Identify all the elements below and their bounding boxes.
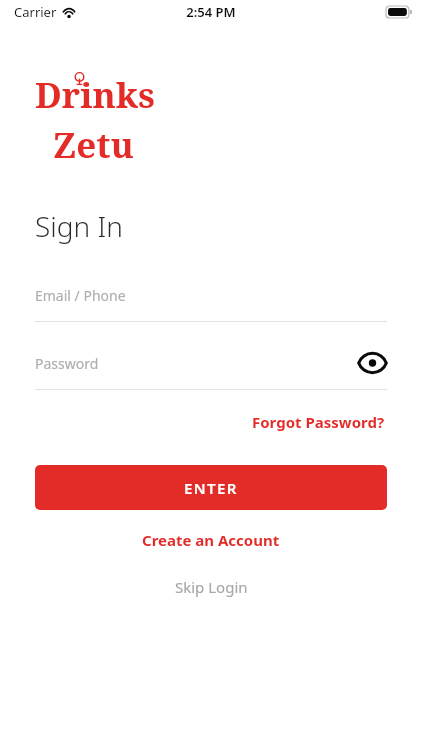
- button[interactable]: Show password: [357, 350, 387, 376]
- button[interactable]: Password: [35, 350, 387, 390]
- staticText: Skip Login: [175, 577, 248, 597]
- staticText: Password: [35, 354, 357, 373]
- button[interactable]: Create an Account: [134, 524, 288, 556]
- staticText: Create an Account: [142, 530, 280, 550]
- staticText: Forgot Password?: [252, 412, 385, 432]
- button[interactable]: Email / Phone: [35, 282, 387, 322]
- button[interactable]: Forgot Password?: [250, 408, 387, 436]
- staticText: Drinks: [35, 71, 155, 119]
- staticText: Email / Phone: [35, 286, 387, 305]
- button[interactable]: Skip Login: [167, 571, 256, 603]
- staticText: 2:54 PM: [186, 3, 236, 21]
- staticText: Sign In: [35, 207, 123, 245]
- button[interactable]: ENTER: [35, 465, 387, 510]
- staticText: Zetu: [53, 121, 134, 169]
- staticText: Carrier: [14, 3, 57, 21]
- staticText: ENTER: [184, 478, 238, 498]
